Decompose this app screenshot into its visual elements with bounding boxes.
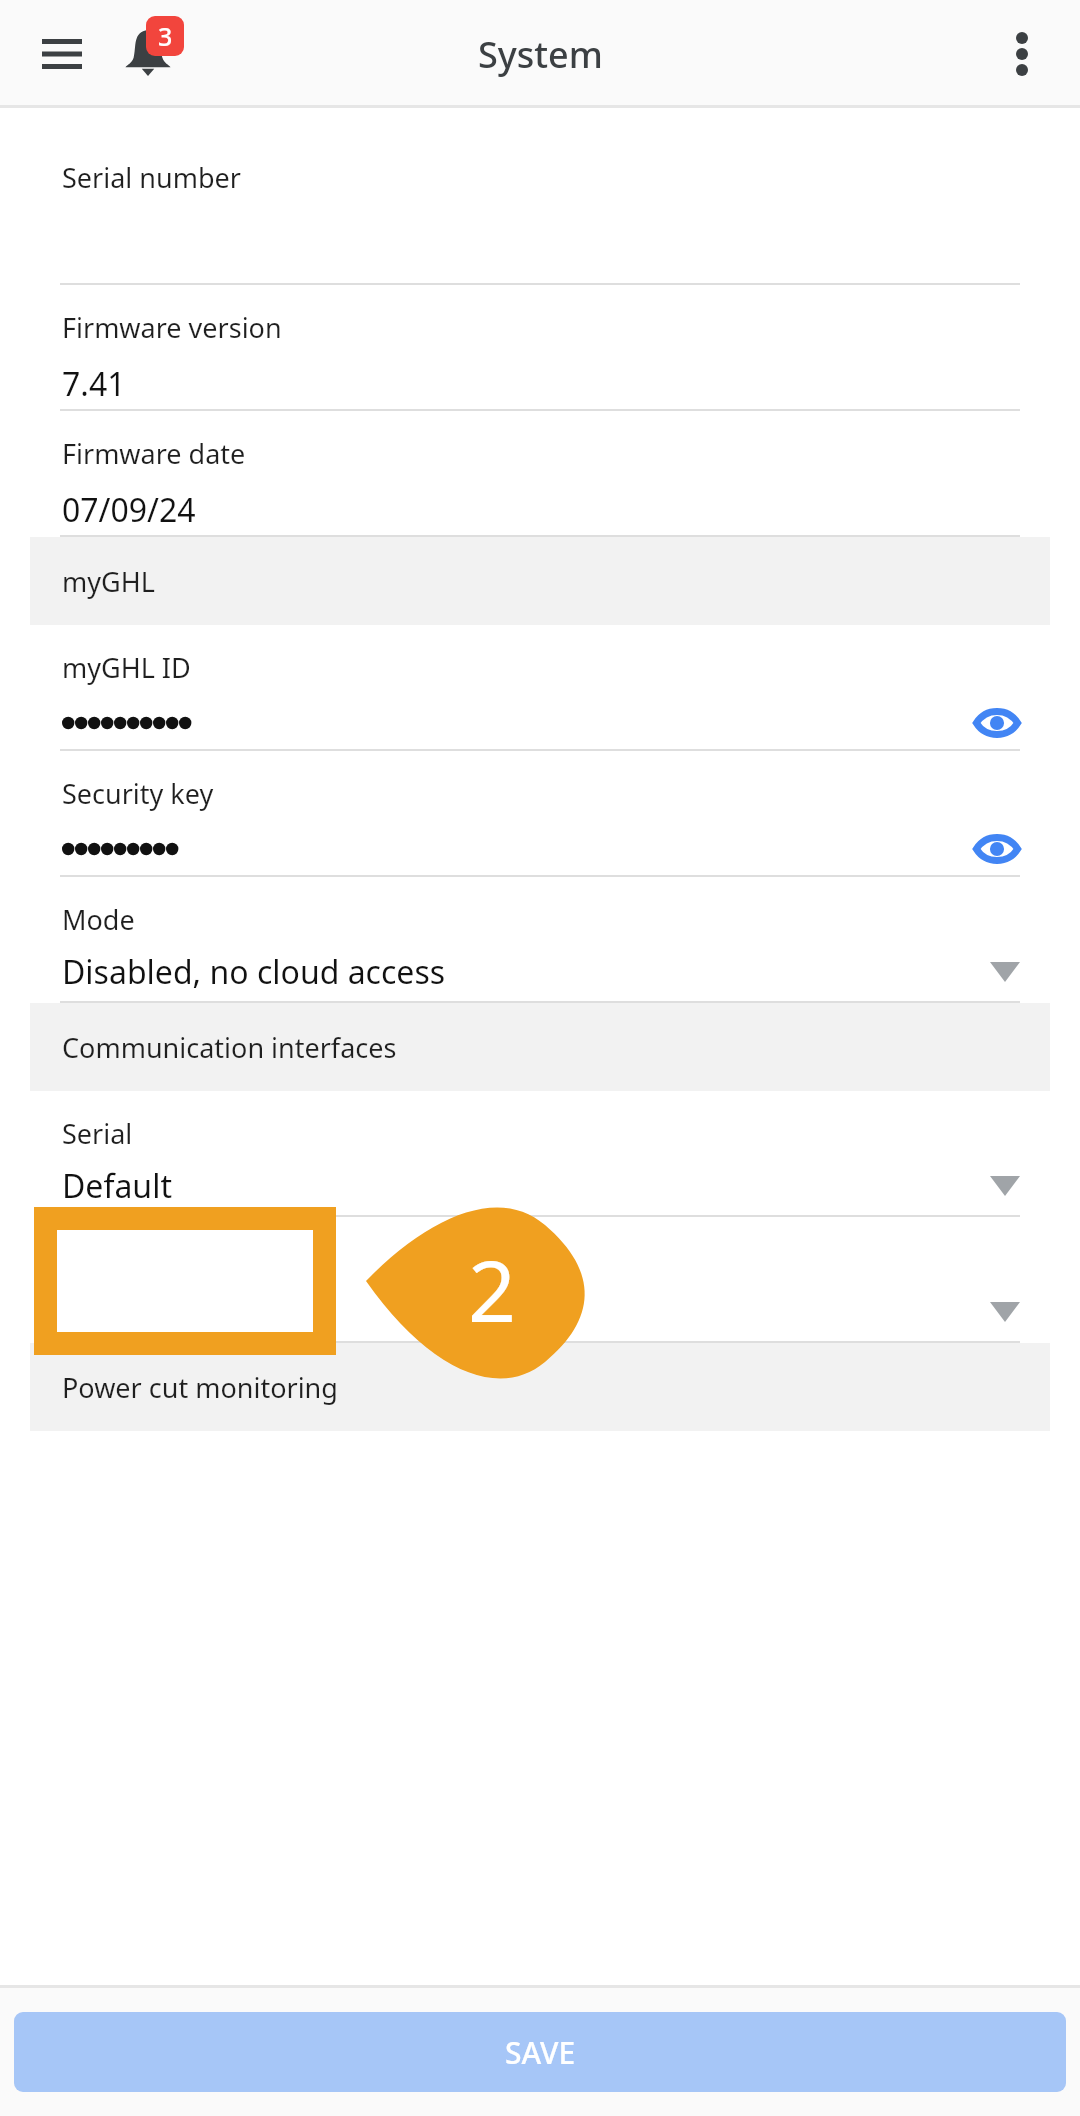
- staticText: System: [478, 30, 603, 79]
- staticText: Disabled, no cloud access: [62, 950, 446, 994]
- staticText: Firmware version: [62, 309, 282, 346]
- button[interactable]: Security key: [0, 751, 1080, 877]
- staticText: Auto. feeder: [62, 1290, 249, 1334]
- button[interactable]: More options: [980, 12, 1064, 96]
- staticText: Serial: [62, 1115, 133, 1152]
- staticText: Security key: [62, 775, 214, 812]
- staticText: 7.41: [62, 362, 126, 406]
- button[interactable]: Show myGHL ID: [966, 696, 1028, 749]
- staticText: Firmware date: [62, 435, 246, 472]
- staticText: Mode: [62, 901, 135, 938]
- button[interactable]: SAVE: [14, 2012, 1066, 2092]
- button[interactable]: myGHL ID: [0, 625, 1080, 751]
- button[interactable]: Firmware date: [0, 411, 1080, 537]
- button[interactable]: Multi function (DCF): [0, 1217, 1080, 1343]
- button[interactable]: Notifications: [104, 4, 196, 96]
- staticText: Multi function (DCF): [62, 1241, 314, 1278]
- staticText: 3: [158, 19, 173, 53]
- staticText: myGHL: [62, 563, 155, 600]
- staticText: Power cut monitoring: [62, 1369, 338, 1406]
- button[interactable]: Serial number: [0, 135, 1080, 285]
- button[interactable]: Mode: [0, 877, 1080, 1003]
- button[interactable]: Show Security key: [966, 822, 1028, 875]
- button[interactable]: Firmware version: [0, 285, 1080, 411]
- staticText: myGHL ID: [62, 649, 191, 686]
- staticText: Default: [62, 1164, 172, 1208]
- staticText: 07/09/24: [62, 488, 196, 532]
- staticText: 2: [468, 1232, 517, 1346]
- staticText: SAVE: [505, 2032, 576, 2073]
- button[interactable]: Serial: [0, 1091, 1080, 1217]
- staticText: Serial number: [62, 159, 241, 196]
- button[interactable]: Menu: [20, 12, 104, 96]
- staticText: Communication interfaces: [62, 1029, 397, 1066]
